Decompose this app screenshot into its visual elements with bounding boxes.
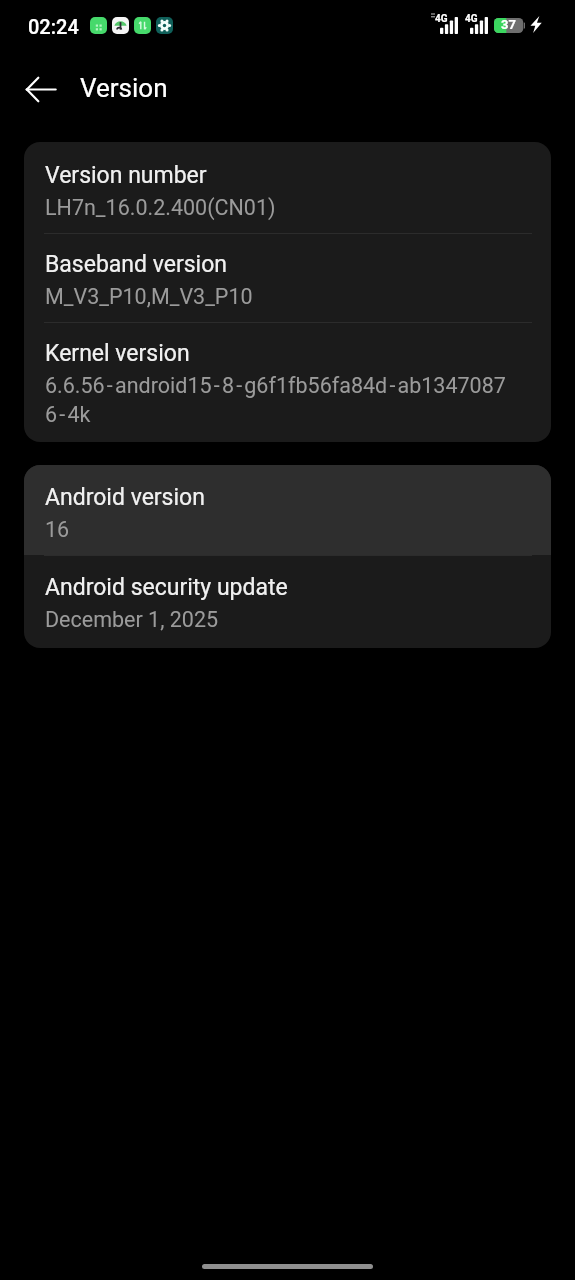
staticText: Android security update — [45, 574, 288, 601]
staticText: Android version — [45, 484, 205, 511]
staticText: 37 — [501, 17, 516, 32]
staticText: LH7n_16.0.2.400(CN01) — [45, 195, 276, 220]
staticText: 4G — [465, 13, 478, 25]
staticText: 4G — [435, 13, 448, 25]
staticText: 6.6.56 - android15 - 8 - g6f1fb56fa84d -… — [45, 373, 506, 398]
staticText: M_V3_P10,M_V3_P10 — [45, 284, 253, 309]
button[interactable]: Android version — [24, 465, 551, 555]
button[interactable]: Back — [12, 61, 68, 117]
staticText: Baseband version — [45, 251, 227, 278]
staticText: December 1, 2025 — [45, 607, 219, 632]
staticText: Kernel version — [45, 340, 190, 367]
button[interactable]: Version number — [24, 145, 551, 233]
staticText: 6 - 4k — [45, 402, 91, 427]
button[interactable]: Baseband version — [24, 234, 551, 322]
staticText: Version — [80, 73, 168, 103]
staticText: Version number — [45, 162, 207, 189]
staticText: 16 — [45, 517, 70, 542]
button[interactable]: Kernel version — [24, 323, 551, 439]
staticText: 02:24 — [28, 15, 79, 38]
button[interactable]: Android security update — [24, 556, 551, 648]
